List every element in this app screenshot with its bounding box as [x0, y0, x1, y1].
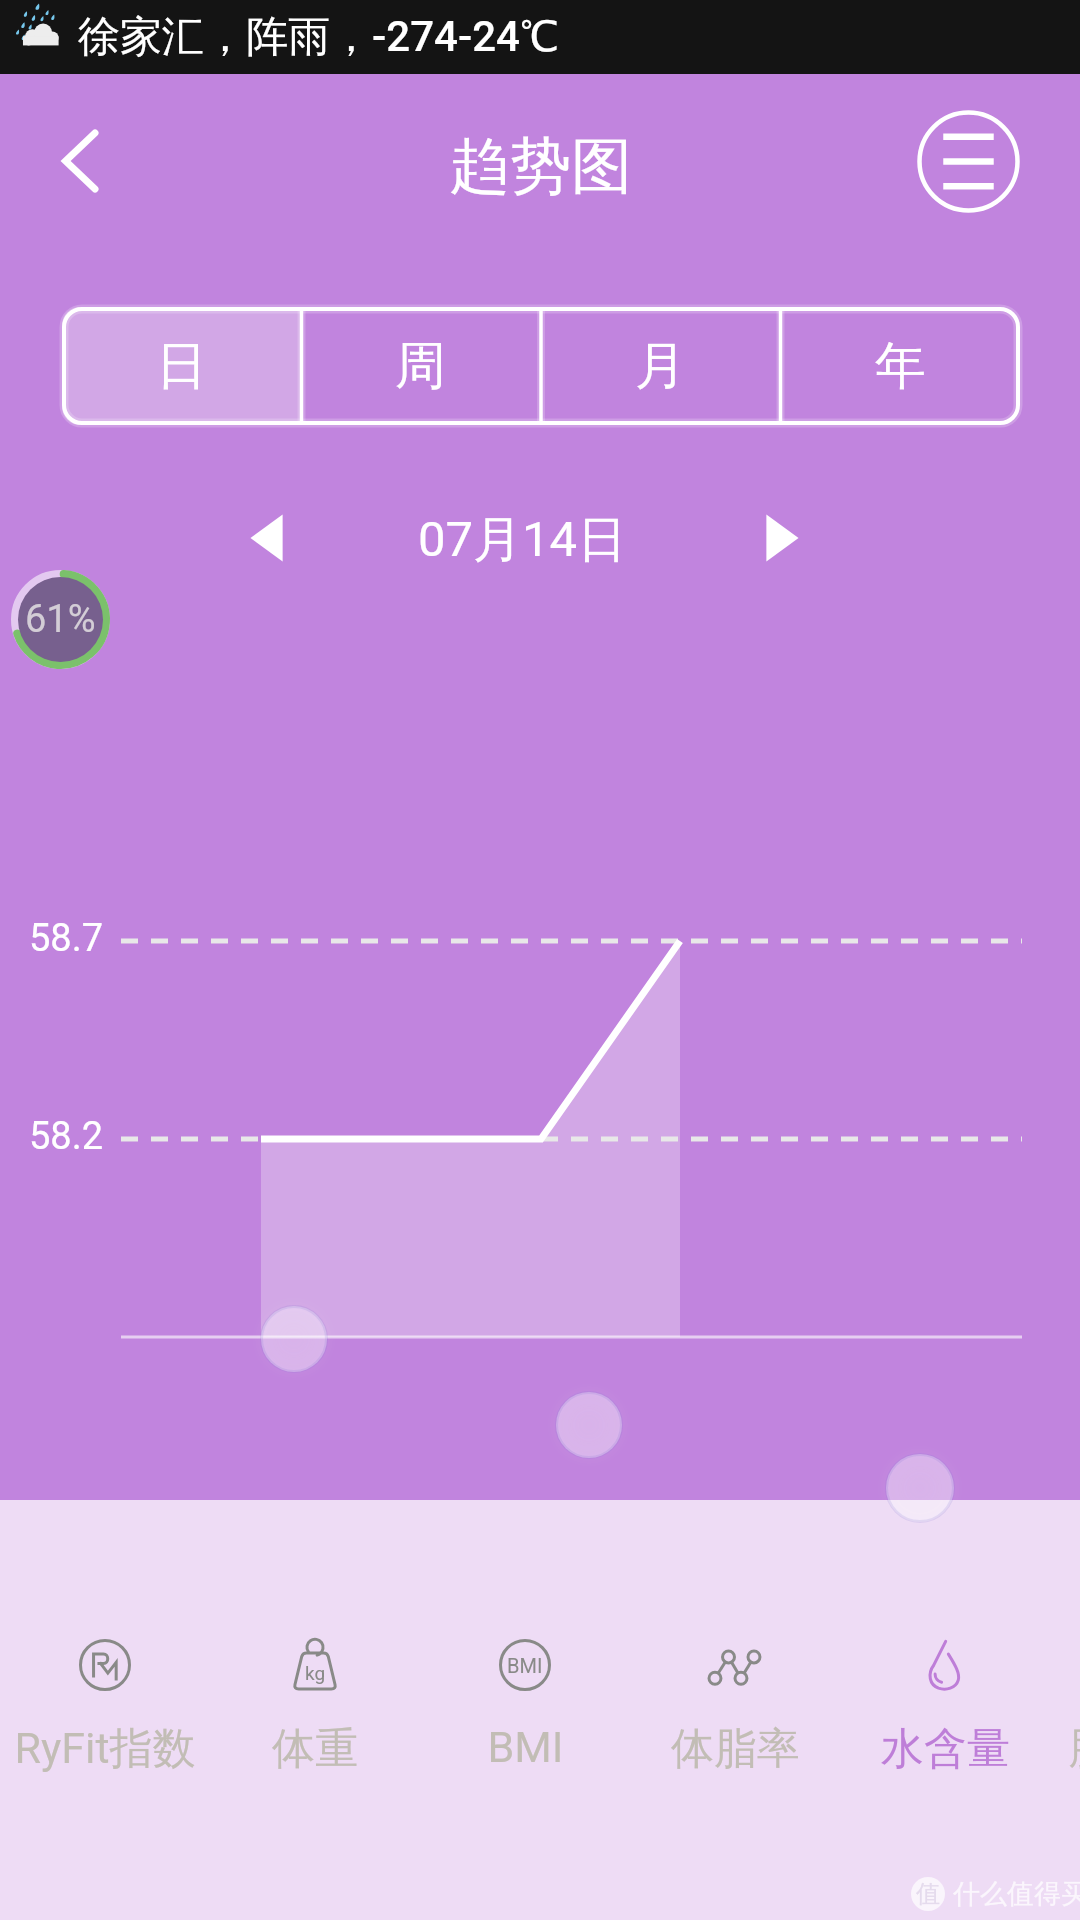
staticText: 体脂率 [671, 1722, 800, 1776]
button[interactable]: RyFit指数 [0, 1500, 210, 1920]
staticText: 徐家汇，阵雨，-274-24℃ [78, 11, 559, 64]
button[interactable]: Back [46, 126, 116, 196]
button[interactable]: BMI [420, 1500, 630, 1920]
staticText: 07月14日 [418, 509, 627, 571]
staticText: 值 [916, 1879, 940, 1909]
button[interactable]: 年 [780, 307, 1020, 425]
button[interactable]: 月 [540, 307, 780, 425]
staticText: 月 [635, 334, 686, 398]
button[interactable]: kg [210, 1500, 420, 1920]
button[interactable]: Next day [753, 503, 823, 573]
staticText: 周 [395, 334, 446, 398]
staticText: RyFit指数 [14, 1722, 196, 1776]
staticText: 趋势图 [449, 128, 632, 205]
staticText: 体重 [272, 1722, 358, 1776]
staticText: 61% [25, 597, 96, 642]
button[interactable]: Menu [917, 110, 1020, 213]
button[interactable]: Previous day [226, 503, 296, 573]
staticText: 水含量 [881, 1722, 1010, 1776]
staticText: 58.2 [29, 1114, 104, 1159]
button[interactable]: 周 [301, 307, 540, 425]
staticText: 什么值得买 [953, 1877, 1080, 1911]
button[interactable]: 水含量 [840, 1500, 1050, 1920]
button[interactable]: 肌肉含量 [1050, 1500, 1080, 1920]
staticText: 日 [156, 334, 207, 398]
staticText: 年 [875, 334, 926, 398]
staticText: BMI [507, 1654, 543, 1677]
button[interactable]: 日 [62, 307, 301, 425]
staticText: 肌肉含量 [1069, 1722, 1080, 1776]
button[interactable]: 体脂率 [630, 1500, 840, 1920]
staticText: kg [305, 1662, 326, 1684]
staticText: BMI [487, 1722, 564, 1772]
staticText: 58.7 [29, 916, 104, 961]
